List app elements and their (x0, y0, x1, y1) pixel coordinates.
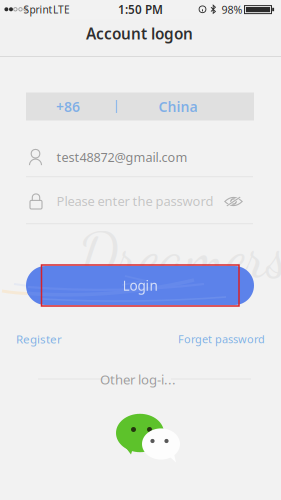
staticText: LTE (53, 3, 70, 16)
button[interactable]: Login (26, 266, 254, 305)
button[interactable]: Forget password (176, 328, 267, 350)
staticText: 98% (221, 2, 242, 17)
button[interactable]: Register (14, 327, 64, 351)
button[interactable]: +86 (26, 92, 254, 120)
staticText: China (158, 97, 197, 116)
staticText: test48872@gmail.com (56, 148, 187, 166)
button[interactable]: Sign in with WeChat (115, 411, 181, 464)
staticText: Sprint (23, 3, 52, 16)
staticText: s t o c k . c o m (129, 293, 203, 307)
staticText: +86 (56, 97, 80, 116)
staticText: 1:50 PM (118, 1, 163, 17)
staticText: Please enter the password (56, 192, 213, 210)
staticText: Dreamers (78, 219, 281, 293)
staticText: Other log-i... (100, 370, 176, 388)
staticText: Account logon (86, 23, 193, 44)
staticText: Login (122, 276, 157, 295)
staticText: Forget password (178, 332, 265, 346)
staticText: Register (16, 331, 62, 347)
